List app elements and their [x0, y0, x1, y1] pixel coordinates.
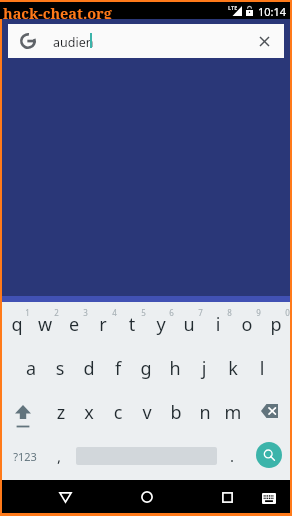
staticText: . — [226, 446, 238, 466]
staticText: j — [193, 356, 215, 381]
button[interactable]: ?123 — [2, 434, 47, 478]
staticText: m — [222, 400, 244, 425]
button[interactable] — [134, 390, 163, 434]
staticText: v — [136, 400, 158, 425]
staticText: q — [6, 312, 28, 337]
staticText: 4 — [109, 307, 120, 318]
button[interactable] — [220, 346, 249, 390]
button[interactable] — [105, 390, 134, 434]
button[interactable]: Clear search — [246, 24, 282, 58]
staticText: 2 — [51, 307, 62, 318]
staticText: 5 — [138, 307, 149, 318]
staticText: 10:14 — [258, 4, 287, 19]
button[interactable] — [119, 302, 148, 346]
staticText: hack-cheat.org — [3, 3, 112, 20]
button[interactable] — [47, 346, 76, 390]
button[interactable]: Recent apps — [209, 481, 245, 513]
button[interactable] — [192, 390, 221, 434]
button[interactable] — [162, 346, 191, 390]
button[interactable] — [61, 302, 90, 346]
staticText: o — [236, 312, 258, 337]
button[interactable] — [205, 302, 234, 346]
staticText: 7 — [195, 307, 206, 318]
staticText: n — [194, 400, 216, 425]
staticText: , — [53, 446, 65, 466]
staticText: 6 — [166, 307, 177, 318]
staticText: x — [78, 400, 100, 425]
staticText: z — [50, 400, 72, 425]
staticText: i — [207, 312, 229, 337]
button[interactable]: Back — [45, 481, 85, 513]
button[interactable] — [76, 390, 105, 434]
staticText: LTE — [228, 4, 238, 11]
staticText: t — [121, 312, 143, 337]
staticText: audien — [53, 34, 94, 51]
button[interactable] — [263, 302, 292, 346]
staticText: a — [20, 356, 42, 381]
staticText: y — [150, 312, 172, 337]
button[interactable]: Home — [127, 481, 167, 513]
staticText: 0 — [282, 307, 292, 318]
staticText: r — [92, 312, 114, 337]
staticText: g — [135, 356, 157, 381]
button[interactable] — [176, 302, 205, 346]
staticText: f — [107, 356, 129, 381]
staticText: 8 — [224, 307, 235, 318]
button[interactable] — [48, 390, 77, 434]
button[interactable]: audien — [8, 24, 284, 58]
staticText: s — [49, 356, 71, 381]
button[interactable] — [191, 346, 220, 390]
staticText: 9 — [253, 307, 264, 318]
button[interactable]: Backspace — [247, 390, 292, 434]
button[interactable] — [148, 302, 177, 346]
staticText: d — [78, 356, 100, 381]
button[interactable]: Switch keyboard — [253, 482, 285, 514]
button[interactable] — [32, 302, 61, 346]
staticText: b — [165, 400, 187, 425]
button[interactable] — [220, 390, 249, 434]
staticText: k — [222, 356, 244, 381]
button[interactable] — [90, 302, 119, 346]
staticText: 1 — [22, 307, 33, 318]
staticText: w — [34, 312, 56, 337]
button[interactable] — [105, 346, 134, 390]
staticText: ?123 — [13, 449, 37, 464]
button[interactable] — [133, 346, 162, 390]
button[interactable] — [249, 346, 278, 390]
staticText: p — [265, 312, 287, 337]
button[interactable] — [76, 346, 105, 390]
staticText: 3 — [80, 307, 91, 318]
button[interactable] — [234, 302, 263, 346]
button[interactable] — [4, 302, 33, 346]
button[interactable] — [163, 390, 192, 434]
button[interactable]: . — [220, 434, 245, 478]
staticText: c — [107, 400, 129, 425]
button[interactable]: , — [47, 434, 72, 478]
button[interactable]: Shift — [2, 390, 47, 434]
staticText: e — [63, 312, 85, 337]
button[interactable]: Search — [256, 442, 282, 468]
staticText: l — [251, 356, 273, 381]
button[interactable] — [18, 346, 47, 390]
staticText: h — [164, 356, 186, 381]
staticText: u — [178, 312, 200, 337]
